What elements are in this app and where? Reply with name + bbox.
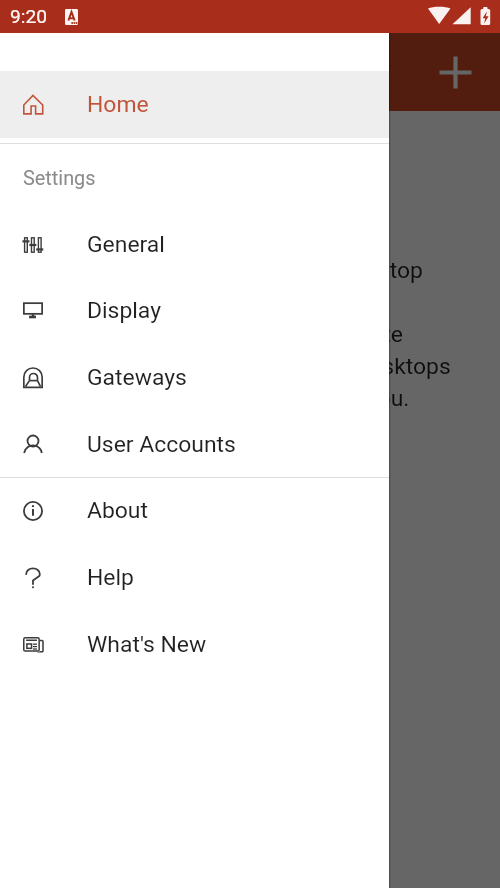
staticText: What's New [87,631,207,658]
staticText: Home [87,91,149,118]
staticText: About [87,497,148,524]
button[interactable]: What's New [0,611,389,678]
staticText: Settings [23,167,96,190]
button[interactable]: About [0,477,389,544]
button[interactable]: Help [0,544,389,611]
button[interactable]: User Accounts [0,411,389,478]
button[interactable]: General [0,211,389,278]
button[interactable]: Gateways [0,344,389,411]
staticText: User Accounts [87,431,236,458]
staticText: General [87,231,165,258]
staticText: No saved connection to a desktop Tap the… [49,257,451,412]
button[interactable]: Home [0,71,389,138]
staticText: 9:20 [10,5,47,27]
staticText: Display [87,297,161,324]
staticText: Gateways [87,364,187,391]
button[interactable]: Add desktop [432,49,479,96]
button[interactable]: Display [0,277,389,344]
staticText: Help [87,564,134,591]
